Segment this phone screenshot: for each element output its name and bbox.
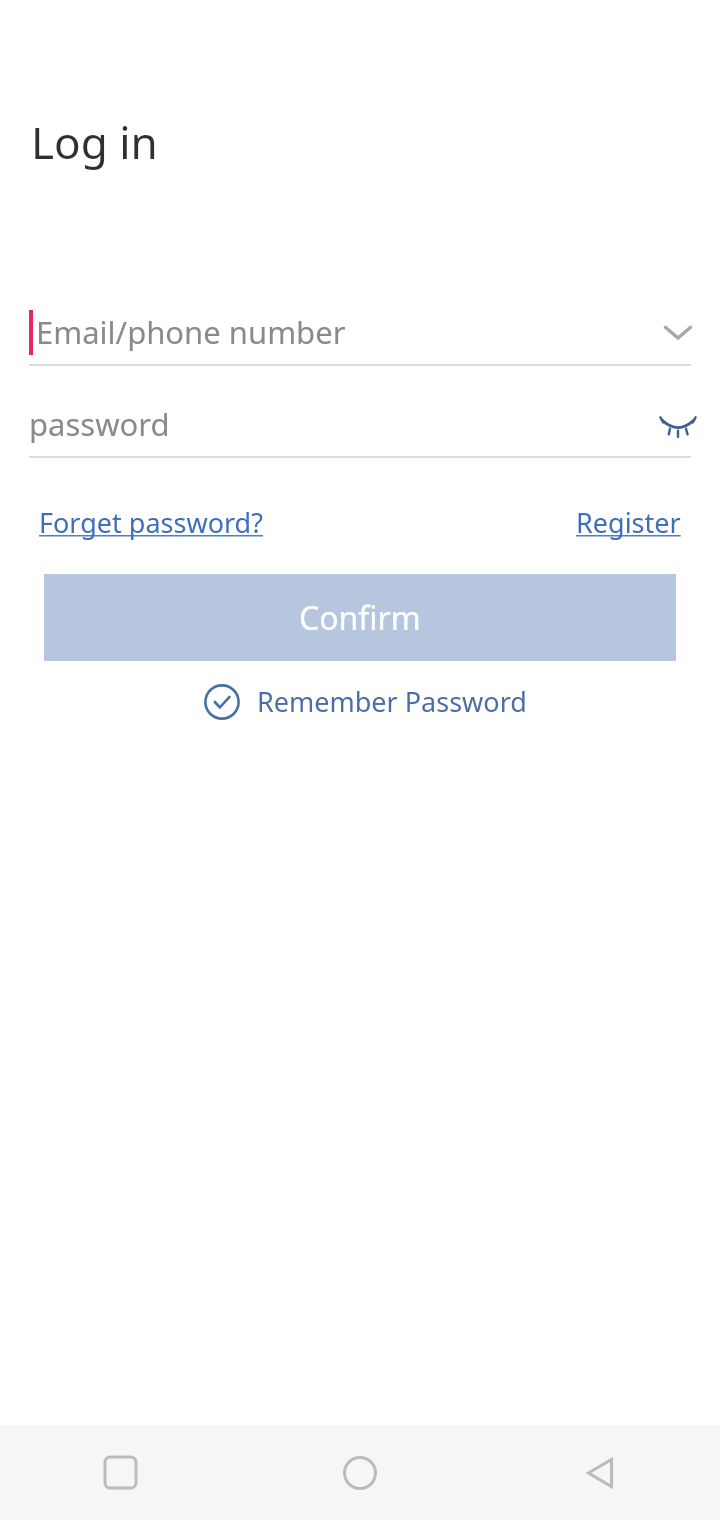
button[interactable]: password (0, 392, 720, 456)
staticText: Register (576, 504, 681, 541)
button[interactable]: Confirm (44, 574, 676, 661)
button[interactable]: Show account suggestions (650, 304, 706, 360)
staticText: password (29, 403, 170, 445)
staticText: Email/phone number (36, 311, 346, 353)
button[interactable]: Register (576, 500, 681, 545)
button[interactable]: Recent apps (0, 1425, 240, 1520)
button[interactable]: Back (480, 1425, 720, 1520)
button[interactable]: Remember Password (200, 679, 531, 724)
staticText: Log in (31, 112, 158, 172)
button[interactable]: Forget password? (39, 500, 263, 545)
staticText: Remember Password (257, 683, 527, 720)
button[interactable]: Email/phone number (0, 300, 720, 364)
staticText: Confirm (299, 596, 421, 640)
staticText: Forget password? (39, 504, 263, 541)
button[interactable]: Home (240, 1425, 480, 1520)
button[interactable]: Show password (650, 396, 706, 452)
